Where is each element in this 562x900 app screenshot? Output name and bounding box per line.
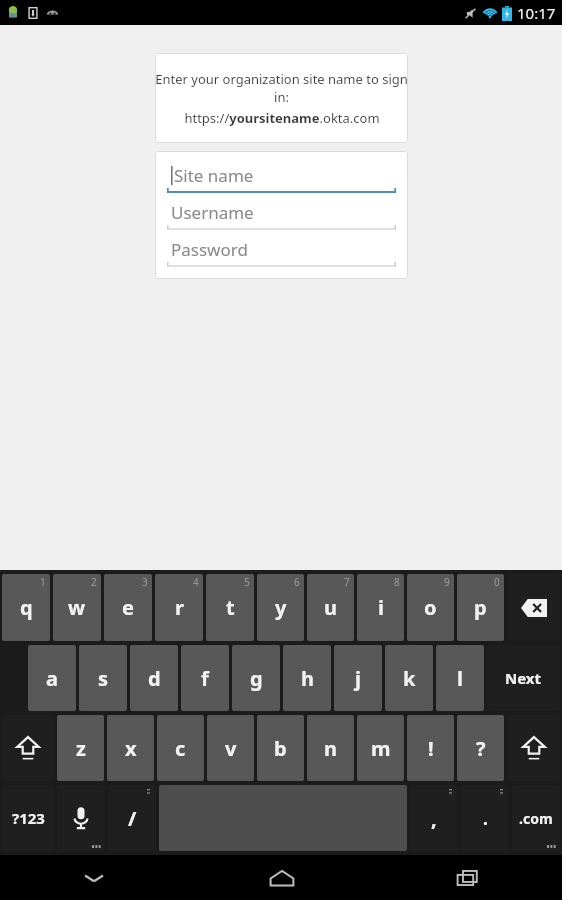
button[interactable]: o xyxy=(407,574,454,641)
button[interactable]: l xyxy=(436,645,484,711)
staticText: ! xyxy=(428,735,434,762)
staticText: n xyxy=(324,735,337,762)
staticText: m xyxy=(371,735,391,762)
staticText: k xyxy=(403,665,416,692)
staticText: 7 xyxy=(344,575,350,589)
button[interactable]: f xyxy=(181,645,229,711)
button[interactable]: ?123 xyxy=(2,785,54,851)
button[interactable]: u xyxy=(307,574,354,641)
button[interactable]: n xyxy=(307,715,354,781)
button[interactable]: m xyxy=(357,715,404,781)
staticText: r xyxy=(175,594,184,621)
button[interactable]: x xyxy=(107,715,154,781)
staticText: s xyxy=(98,665,109,692)
staticText: .com xyxy=(519,809,553,828)
button[interactable]: Shift xyxy=(507,715,560,781)
button[interactable]: c xyxy=(157,715,204,781)
button[interactable]: . xyxy=(461,785,509,851)
staticText: d xyxy=(148,665,161,692)
staticText: w xyxy=(68,594,86,621)
staticText: l xyxy=(457,665,463,692)
staticText: https://yoursitename.okta.com xyxy=(184,109,380,127)
staticText: y xyxy=(275,594,287,621)
staticText: b xyxy=(274,735,287,762)
button[interactable]: s xyxy=(79,645,127,711)
staticText: u xyxy=(324,594,337,621)
button[interactable]: q xyxy=(2,574,50,641)
staticText: f xyxy=(201,665,209,692)
button[interactable]: i xyxy=(357,574,404,641)
button[interactable]: Backspace xyxy=(507,574,560,641)
staticText: 4 xyxy=(193,575,199,589)
staticText: . xyxy=(483,807,488,830)
button[interactable]: k xyxy=(385,645,433,711)
staticText: o xyxy=(424,594,437,621)
staticText: h xyxy=(301,665,314,692)
staticText: 8 xyxy=(394,575,400,589)
button[interactable]: y xyxy=(257,574,304,641)
staticText: 2 xyxy=(91,575,97,589)
staticText: Site name xyxy=(174,164,254,187)
staticText: Next xyxy=(505,668,542,688)
staticText: i xyxy=(378,594,384,621)
staticText: Password xyxy=(171,238,248,261)
staticText: v xyxy=(225,735,237,762)
button[interactable]: v xyxy=(207,715,254,781)
button[interactable]: Next xyxy=(487,645,560,711)
button[interactable]: g xyxy=(232,645,280,711)
button[interactable]: e xyxy=(104,574,152,641)
button[interactable]: Home xyxy=(188,855,375,900)
staticText: p xyxy=(474,594,487,621)
staticText: q xyxy=(20,594,33,621)
staticText: 5 xyxy=(244,575,250,589)
staticText: 1 xyxy=(40,575,46,589)
button[interactable]: Hide keyboard xyxy=(0,855,188,900)
button[interactable]: ! xyxy=(407,715,454,781)
button[interactable]: b xyxy=(257,715,304,781)
button[interactable]: Voice input xyxy=(57,785,105,851)
button[interactable]: t xyxy=(206,574,254,641)
button[interactable]: Recent apps xyxy=(375,855,562,900)
staticText: 6 xyxy=(294,575,300,589)
staticText: g xyxy=(250,665,263,692)
staticText: Enter your organization site name to sig… xyxy=(155,70,408,106)
button[interactable]: .com xyxy=(512,785,560,851)
button[interactable]: j xyxy=(334,645,382,711)
button[interactable]: , xyxy=(410,785,458,851)
staticText: c xyxy=(175,735,186,762)
staticText: j xyxy=(355,665,361,692)
staticText: / xyxy=(128,805,137,832)
staticText: Username xyxy=(171,201,254,224)
button[interactable]: Shift xyxy=(2,715,54,781)
button[interactable]: d xyxy=(130,645,178,711)
staticText: z xyxy=(76,735,86,762)
button[interactable]: / xyxy=(108,785,156,851)
staticText: ? xyxy=(476,735,486,762)
button[interactable]: r xyxy=(155,574,203,641)
button[interactable]: z xyxy=(57,715,104,781)
staticText: ?123 xyxy=(12,808,45,828)
staticText: 10:17 xyxy=(517,3,556,23)
staticText: , xyxy=(431,805,437,832)
staticText: 9 xyxy=(444,575,450,589)
staticText: 3 xyxy=(142,575,148,589)
button[interactable]: Password xyxy=(167,235,396,268)
staticText: t xyxy=(226,594,235,621)
staticText: a xyxy=(46,665,58,692)
button[interactable]: w xyxy=(53,574,101,641)
button[interactable]: p xyxy=(457,574,504,641)
staticText: x xyxy=(125,735,137,762)
button[interactable]: ? xyxy=(457,715,504,781)
button[interactable]: h xyxy=(283,645,331,711)
button[interactable]: Username xyxy=(167,198,396,231)
staticText: e xyxy=(122,594,134,621)
button[interactable]: Site name xyxy=(167,161,396,194)
button[interactable]: a xyxy=(28,645,76,711)
staticText: 0 xyxy=(494,575,500,589)
